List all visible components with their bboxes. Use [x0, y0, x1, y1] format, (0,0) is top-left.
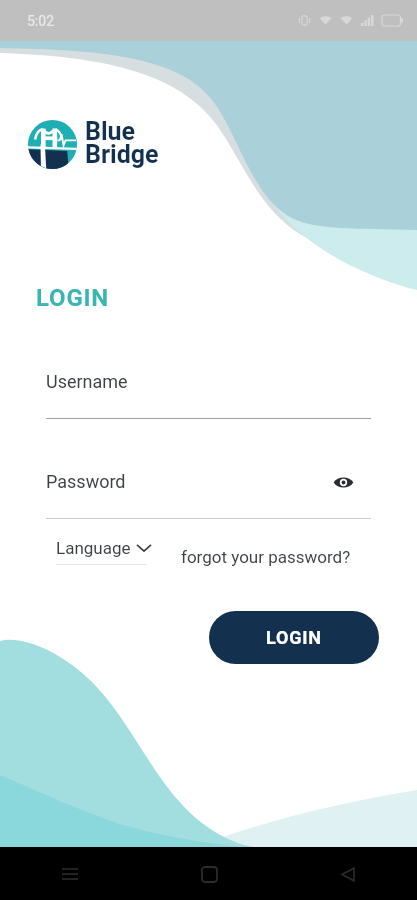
staticText: Username: [46, 371, 128, 392]
button[interactable]: forgot your password?: [181, 547, 351, 567]
staticText: Blue: [85, 117, 136, 146]
button[interactable]: LOGIN: [209, 611, 379, 664]
staticText: Language: [56, 538, 131, 558]
staticText: Bridge: [85, 140, 159, 169]
staticText: LOGIN: [36, 284, 110, 312]
button[interactable]: Show password: [330, 469, 357, 496]
staticText: 5:02: [27, 13, 54, 29]
staticText: LOGIN: [266, 627, 322, 648]
button[interactable]: Recent apps: [49, 853, 91, 895]
button[interactable]: Home: [188, 853, 230, 895]
button[interactable]: Back: [327, 853, 369, 895]
button[interactable]: Language: [56, 538, 151, 565]
staticText: Password: [46, 471, 126, 492]
